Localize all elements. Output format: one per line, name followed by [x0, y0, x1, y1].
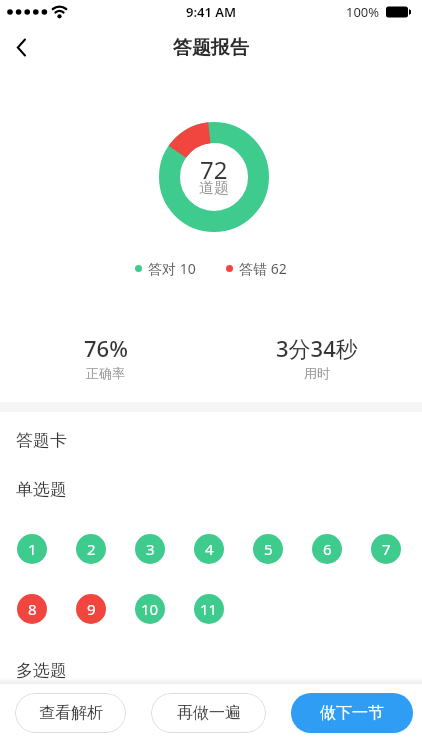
staticText: 做下一节 — [320, 703, 384, 723]
staticText: 100% — [346, 3, 380, 21]
staticText: 单选题 — [16, 479, 67, 500]
staticText: 72 — [200, 153, 228, 183]
staticText: 1 — [28, 539, 37, 559]
button[interactable]: 查看解析 — [15, 693, 126, 733]
button[interactable]: 10 — [135, 594, 165, 624]
button[interactable]: 再做一遍 — [151, 693, 266, 733]
button[interactable]: 1 — [17, 534, 47, 564]
button[interactable]: 11 — [194, 594, 224, 624]
button[interactable]: 2 — [76, 534, 106, 564]
staticText: 10 — [141, 599, 159, 619]
button[interactable]: 3 — [135, 534, 165, 564]
button[interactable]: 5 — [253, 534, 283, 564]
staticText: 9 — [87, 599, 96, 619]
staticText: 答题卡 — [16, 430, 67, 451]
staticText: 5 — [264, 539, 273, 559]
staticText: 4 — [205, 539, 214, 559]
staticText: 多选题 — [16, 660, 67, 681]
staticText: 2 — [87, 539, 96, 559]
staticText: 6 — [323, 539, 332, 559]
staticText: 用时 — [304, 365, 330, 381]
staticText: 76% — [84, 333, 128, 363]
staticText: 8 — [28, 599, 37, 619]
staticText: 11 — [200, 599, 218, 619]
staticText: 再做一遍 — [177, 703, 241, 723]
staticText: 3分34秒 — [276, 333, 358, 363]
staticText: 正确率 — [86, 365, 125, 381]
button[interactable]: 9 — [76, 594, 106, 624]
button[interactable]: 6 — [312, 534, 342, 564]
staticText: 答错 62 — [239, 259, 287, 278]
staticText: 答题报告 — [173, 36, 249, 60]
staticText: 道题 — [199, 179, 229, 198]
staticText: 9:41 AM — [186, 3, 237, 21]
button[interactable]: 4 — [194, 534, 224, 564]
staticText: 7 — [382, 539, 391, 559]
button[interactable]: 8 — [17, 594, 47, 624]
staticText: 3 — [146, 539, 155, 559]
staticText: 查看解析 — [39, 703, 103, 723]
button[interactable]: 7 — [371, 534, 401, 564]
button[interactable]: 做下一节 — [291, 693, 413, 733]
button[interactable] — [4, 30, 40, 66]
staticText: 答对 10 — [148, 259, 196, 278]
